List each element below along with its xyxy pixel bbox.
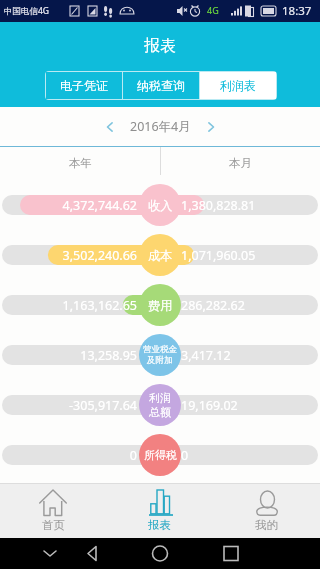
staticText: 0 bbox=[0, 447, 137, 464]
staticText: 收入 bbox=[148, 198, 173, 213]
button[interactable]: 首页 bbox=[0, 484, 106, 538]
button[interactable]: 利润表 bbox=[200, 72, 276, 99]
staticText: 首页 bbox=[42, 518, 65, 532]
staticText: 1,163,162.65 bbox=[0, 297, 137, 314]
staticText: 所得税 bbox=[144, 448, 177, 462]
staticText: 利润表 bbox=[220, 78, 256, 93]
staticText: 1,380,828.81 bbox=[181, 197, 256, 214]
staticText: 中国电信 bbox=[4, 6, 38, 17]
staticText: 19,169.02 bbox=[181, 397, 238, 414]
staticText: 4,372,744.62 bbox=[0, 197, 137, 214]
staticText: 0 bbox=[181, 447, 189, 464]
staticText: 3,502,240.66 bbox=[0, 247, 137, 264]
button[interactable]: 费用 bbox=[139, 284, 181, 326]
button[interactable]: 我的 bbox=[213, 484, 320, 538]
button[interactable]: 电子凭证 bbox=[46, 72, 122, 99]
button[interactable]: 营业税金 bbox=[139, 334, 181, 376]
staticText: 1,071,960.05 bbox=[181, 247, 256, 264]
button[interactable]: 成本 bbox=[139, 234, 181, 276]
staticText: 我的 bbox=[255, 518, 278, 532]
staticText: 电子凭证 bbox=[60, 78, 108, 93]
staticText: 4G bbox=[38, 5, 50, 17]
staticText: 286,282.62 bbox=[181, 297, 245, 314]
staticText: 4G bbox=[207, 4, 219, 16]
button[interactable]: 下一月 bbox=[200, 116, 222, 138]
staticText: 本月 bbox=[229, 156, 252, 170]
button[interactable]: 利润 bbox=[139, 384, 181, 426]
staticText: 营业税金 bbox=[143, 344, 177, 355]
button[interactable]: 上一月 bbox=[99, 116, 121, 138]
staticText: 本年 bbox=[69, 156, 92, 170]
staticText: 纳税查询 bbox=[137, 78, 185, 93]
button[interactable]: 收入 bbox=[139, 184, 181, 226]
staticText: 3,417.12 bbox=[181, 347, 231, 364]
staticText: 总额 bbox=[149, 405, 171, 419]
staticText: -305,917.64 bbox=[0, 397, 137, 414]
staticText: 及附加 bbox=[147, 355, 173, 366]
staticText: 成本 bbox=[148, 248, 173, 263]
staticText: 13,258.95 bbox=[0, 347, 137, 364]
staticText: 利润 bbox=[149, 391, 171, 405]
staticText: 18:37 bbox=[282, 3, 312, 19]
staticText: 报表 bbox=[148, 518, 171, 532]
staticText: 报表 bbox=[144, 36, 176, 56]
staticText: 费用 bbox=[148, 298, 173, 313]
staticText: 2016年4月 bbox=[130, 118, 191, 135]
button[interactable]: 报表 bbox=[106, 484, 213, 538]
button[interactable]: 所得税 bbox=[139, 434, 181, 476]
button[interactable]: 纳税查询 bbox=[123, 72, 199, 99]
